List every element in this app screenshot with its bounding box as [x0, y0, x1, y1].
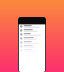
- button[interactable]: Conversation: [19, 48, 45, 52]
- button[interactable]: Conversation: [19, 24, 45, 28]
- button[interactable]: Conversation: [19, 36, 45, 40]
- button[interactable]: Conversation: [19, 40, 45, 44]
- button[interactable]: Conversation: [19, 32, 45, 36]
- button[interactable]: Conversation: [19, 44, 45, 48]
- button[interactable]: Conversation: [19, 28, 45, 32]
